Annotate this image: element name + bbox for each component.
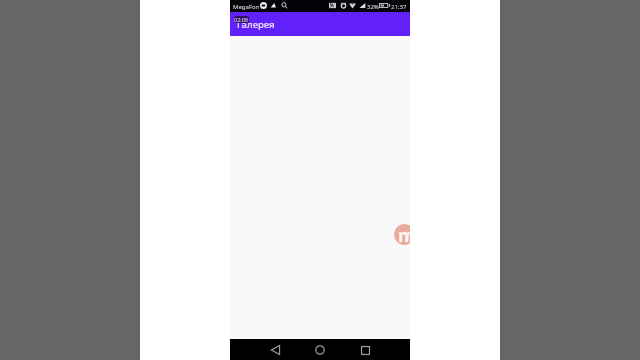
staticText: 02:06 [234,16,249,23]
staticText: m [398,224,410,244]
button[interactable]: Recent apps [355,340,375,360]
button[interactable]: Home [310,340,330,360]
staticText: MegaFon [233,3,260,11]
staticText: 21:37 [391,3,407,11]
staticText: Галерея [237,18,275,31]
staticText: 32% [367,3,379,11]
button[interactable]: Back [265,340,285,360]
